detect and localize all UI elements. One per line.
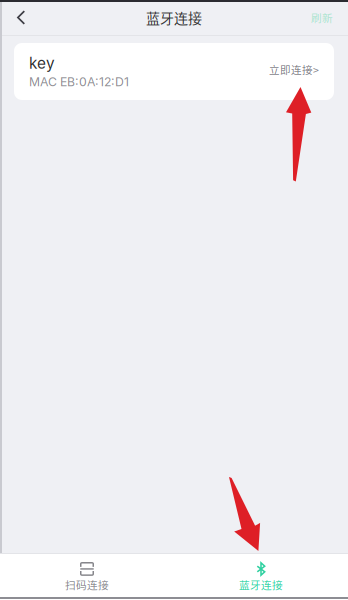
button[interactable]: 蓝牙连接 <box>174 554 348 600</box>
button[interactable]: 立即连接> <box>269 62 319 81</box>
button[interactable]: 扫码连接 <box>0 554 174 600</box>
staticText: 蓝牙连接 <box>146 7 202 28</box>
button[interactable]: Back <box>0 0 51 34</box>
staticText: 扫码连接 <box>65 577 109 592</box>
staticText: key <box>29 54 55 72</box>
staticText: 立即连接> <box>269 62 319 77</box>
staticText: 刷新 <box>311 10 333 25</box>
staticText: 蓝牙连接 <box>239 577 283 592</box>
staticText: MAC EB:0A:12:D1 <box>29 74 129 89</box>
button[interactable]: 刷新 <box>289 0 348 34</box>
